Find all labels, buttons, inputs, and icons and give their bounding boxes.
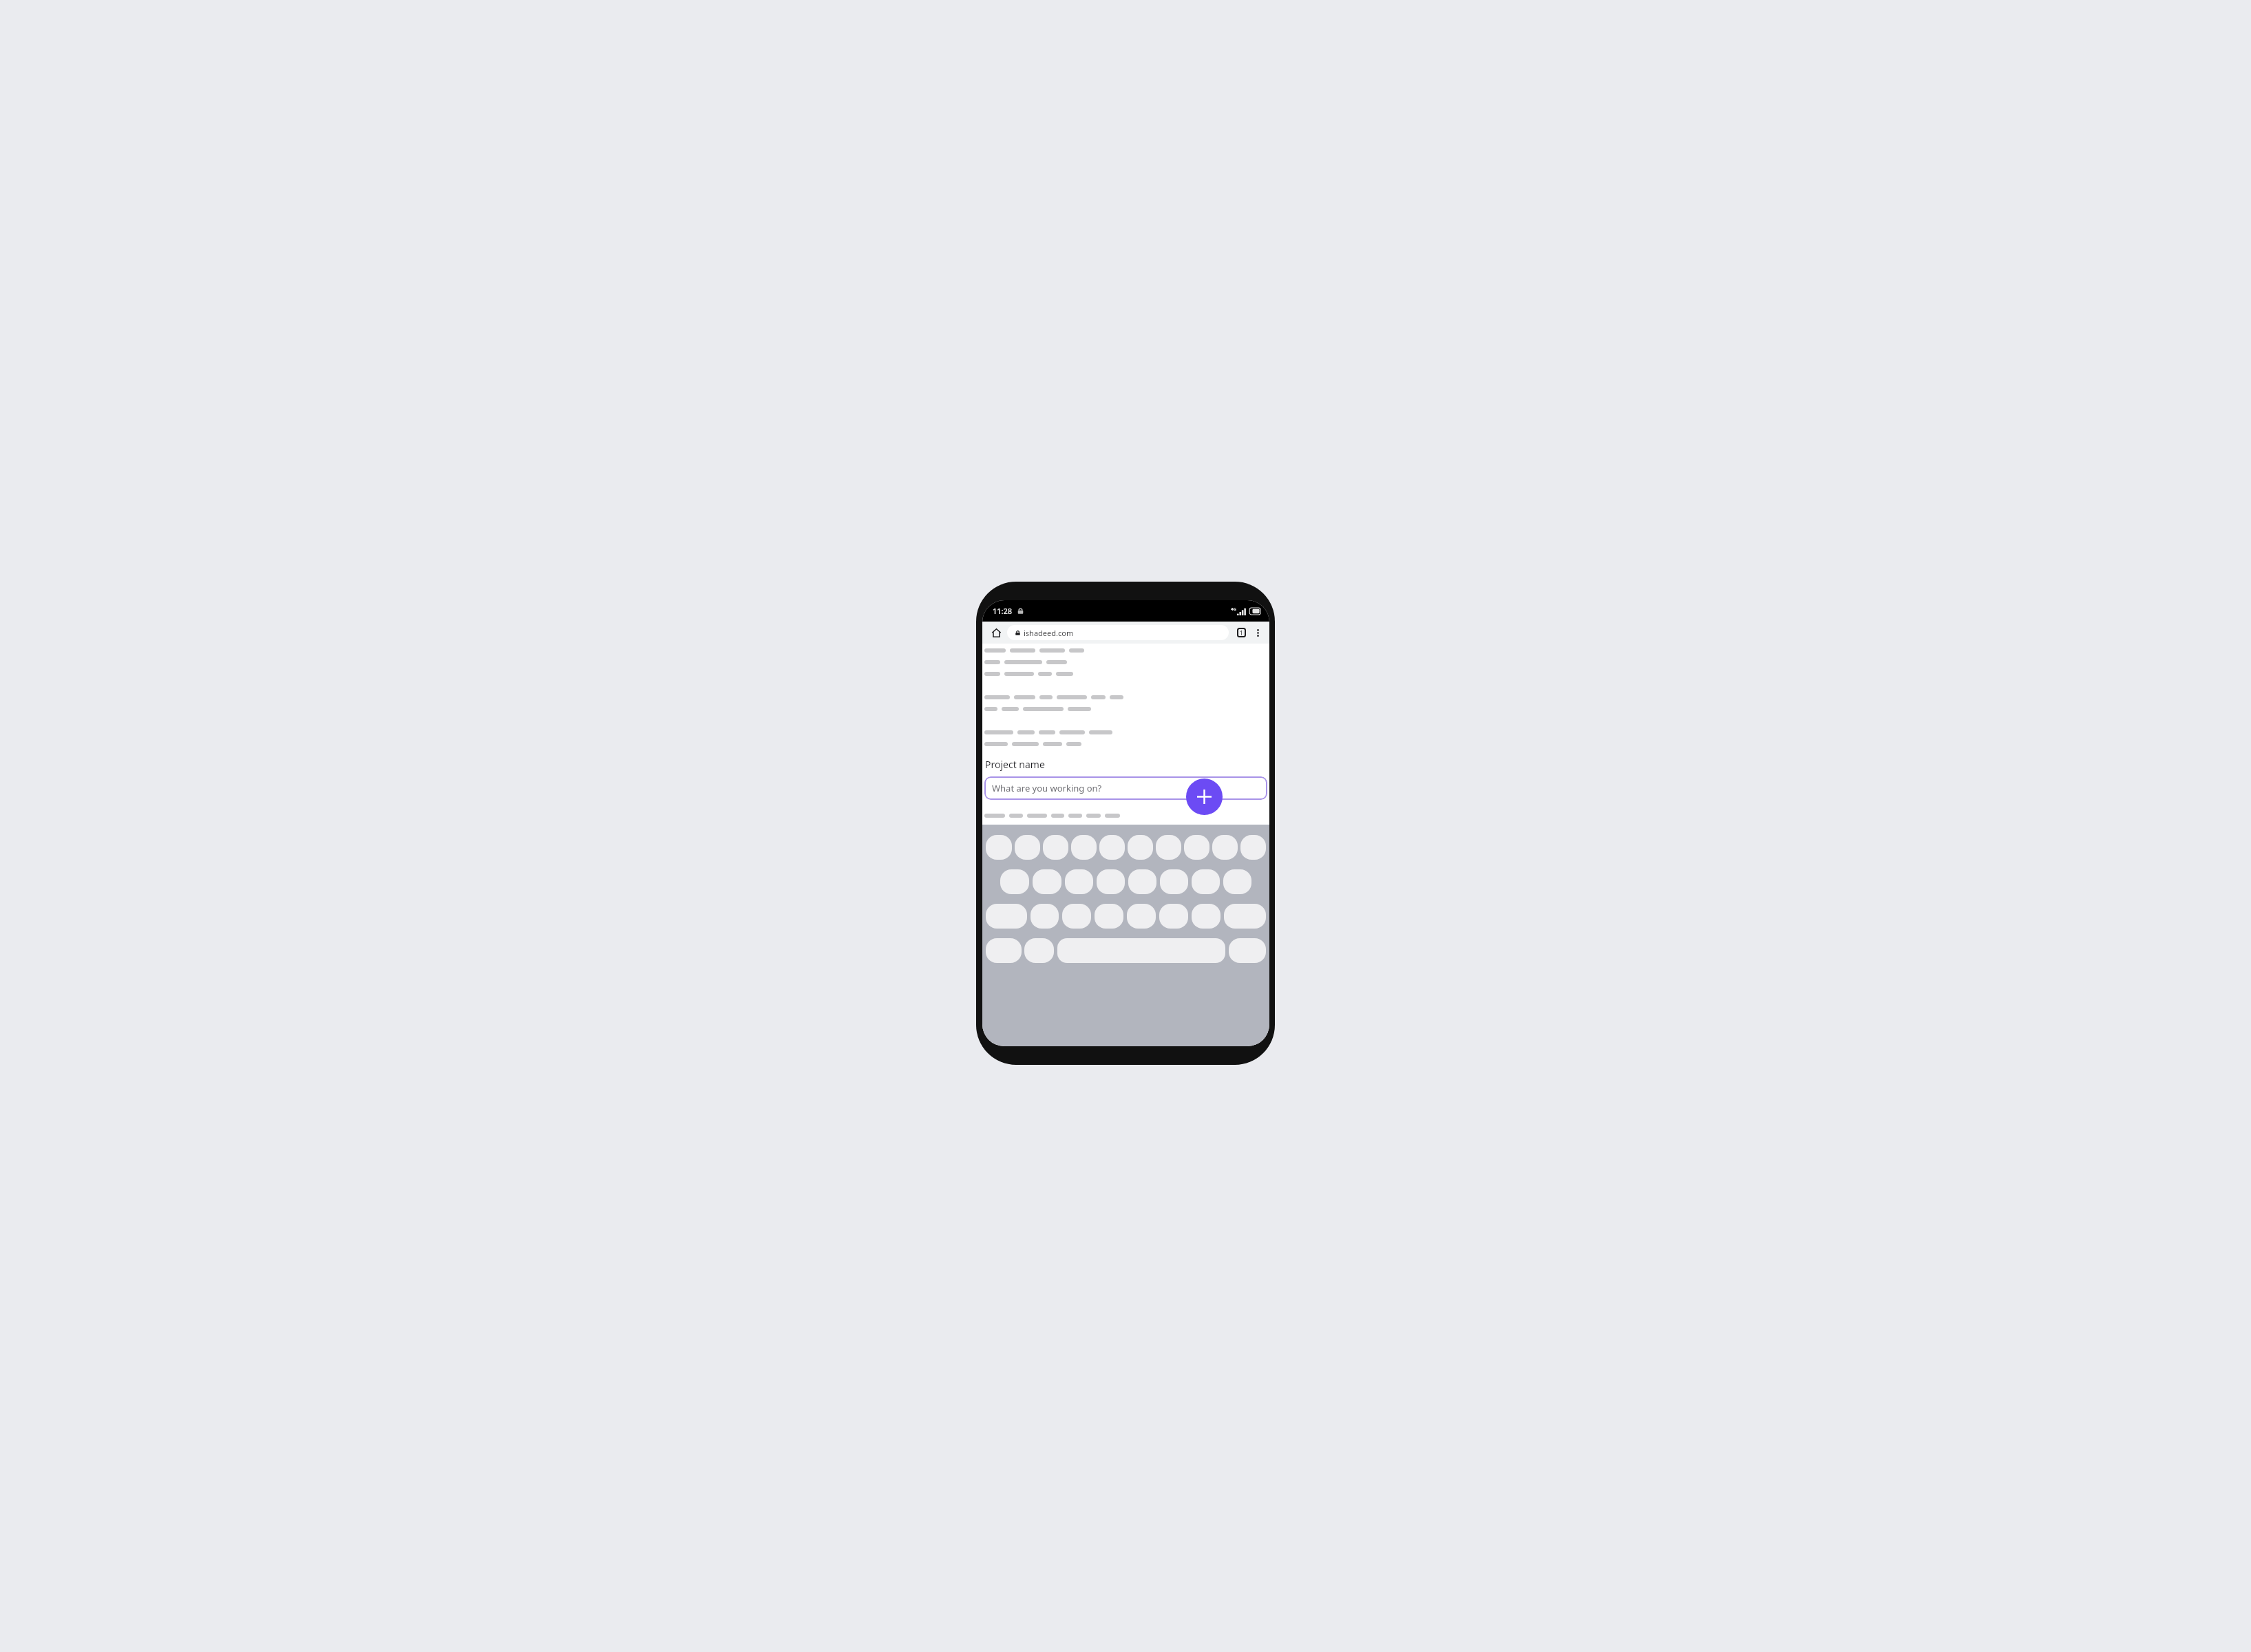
staticText: ishadeed.com — [1024, 628, 1074, 638]
staticText: Project name — [985, 758, 1045, 771]
button[interactable]: Home — [987, 624, 1005, 642]
button[interactable] — [1000, 869, 1029, 894]
staticText: 1 — [1240, 629, 1243, 637]
button[interactable]: Add project — [1186, 779, 1223, 815]
button[interactable] — [986, 938, 1022, 963]
button[interactable] — [1156, 835, 1181, 860]
button[interactable] — [1033, 869, 1061, 894]
button[interactable] — [1128, 869, 1156, 894]
button[interactable] — [1057, 938, 1225, 963]
button[interactable] — [1192, 904, 1220, 929]
button[interactable] — [986, 904, 1027, 929]
button[interactable] — [1095, 904, 1123, 929]
button[interactable] — [1229, 938, 1266, 963]
button[interactable] — [1159, 904, 1188, 929]
button[interactable] — [1071, 835, 1097, 860]
button[interactable] — [1192, 869, 1220, 894]
button[interactable] — [1043, 835, 1068, 860]
button[interactable] — [1212, 835, 1238, 860]
button[interactable]: Tabs, 1 open — [1233, 624, 1249, 641]
button[interactable]: What are you working on? — [984, 776, 1267, 800]
button[interactable] — [1128, 835, 1153, 860]
button[interactable] — [1031, 904, 1059, 929]
button[interactable] — [1097, 869, 1125, 894]
staticText: 4G — [1231, 606, 1236, 612]
button[interactable] — [1062, 904, 1091, 929]
button[interactable] — [1024, 938, 1054, 963]
button[interactable] — [1160, 869, 1188, 894]
button[interactable]: ishadeed.com — [1007, 625, 1229, 640]
button[interactable] — [1065, 869, 1093, 894]
button[interactable] — [1223, 869, 1251, 894]
button[interactable] — [1184, 835, 1209, 860]
button[interactable] — [1127, 904, 1156, 929]
staticText: What are you working on? — [992, 782, 1102, 794]
button[interactable] — [1240, 835, 1266, 860]
button[interactable]: More options — [1249, 624, 1266, 641]
staticText: 11:28 — [993, 606, 1013, 616]
button[interactable] — [986, 835, 1012, 860]
button[interactable] — [1099, 835, 1125, 860]
button[interactable] — [1015, 835, 1040, 860]
button[interactable] — [1224, 904, 1266, 929]
